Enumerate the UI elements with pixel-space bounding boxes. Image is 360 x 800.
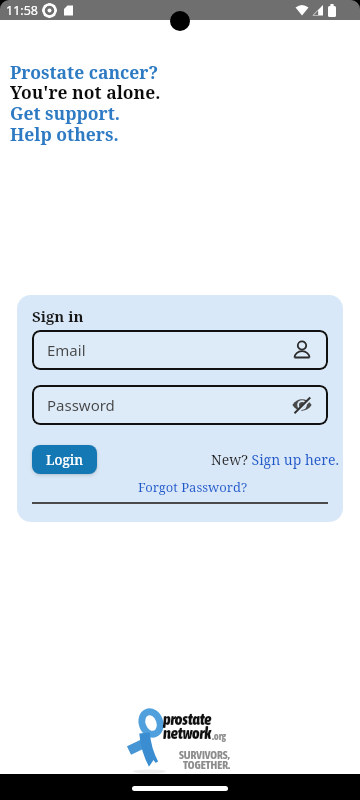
button[interactable]: Password — [32, 385, 328, 425]
button[interactable]: Email — [32, 330, 328, 370]
staticText: TOGETHER. — [183, 758, 230, 771]
staticText: Email — [47, 340, 86, 360]
staticText: Login — [46, 451, 84, 469]
staticText: .org — [212, 730, 227, 742]
staticText: 11:58 — [6, 2, 38, 19]
button[interactable]: New? Sign up here. — [211, 450, 339, 469]
staticText: Sign in — [32, 306, 84, 326]
staticText: Password — [47, 395, 115, 415]
staticText: network — [163, 724, 212, 742]
staticText: prostate — [163, 710, 212, 728]
button[interactable]: Login — [32, 445, 97, 474]
staticText: Prostate cancer? You're not alone. Get s… — [10, 60, 161, 146]
staticText: SURVIVORS, — [179, 748, 230, 761]
staticText: Forgot Password? — [138, 478, 248, 496]
button[interactable]: Forgot Password? — [32, 478, 328, 496]
